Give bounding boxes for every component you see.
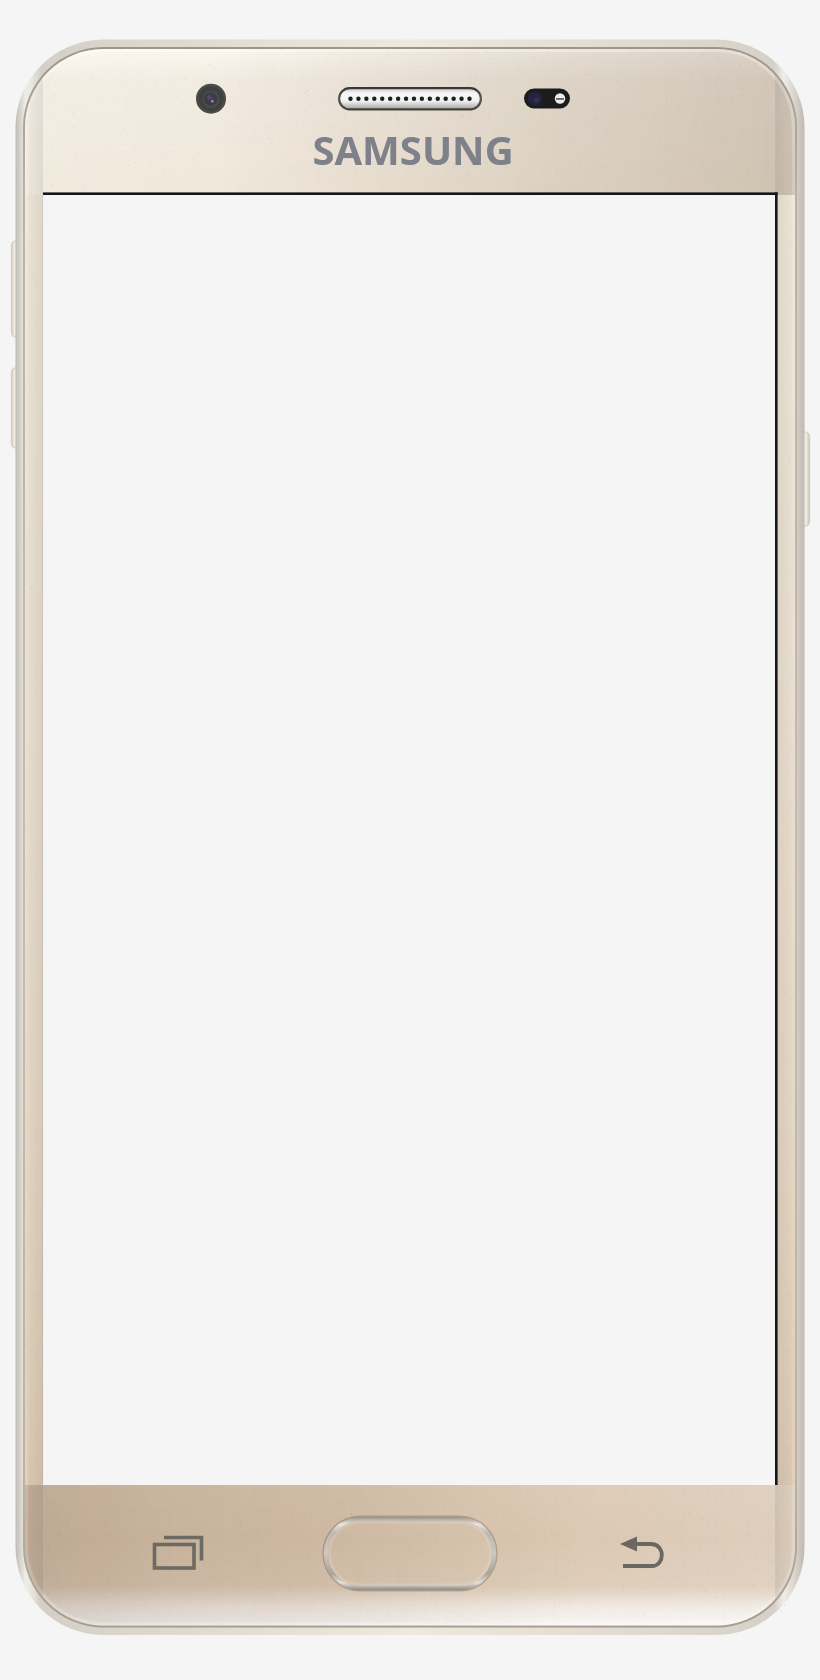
button[interactable]: Home (324, 1517, 496, 1591)
button[interactable]: Recent apps (140, 1512, 220, 1592)
button[interactable]: Back (605, 1512, 685, 1592)
staticText: SAMSUNG (312, 122, 514, 172)
